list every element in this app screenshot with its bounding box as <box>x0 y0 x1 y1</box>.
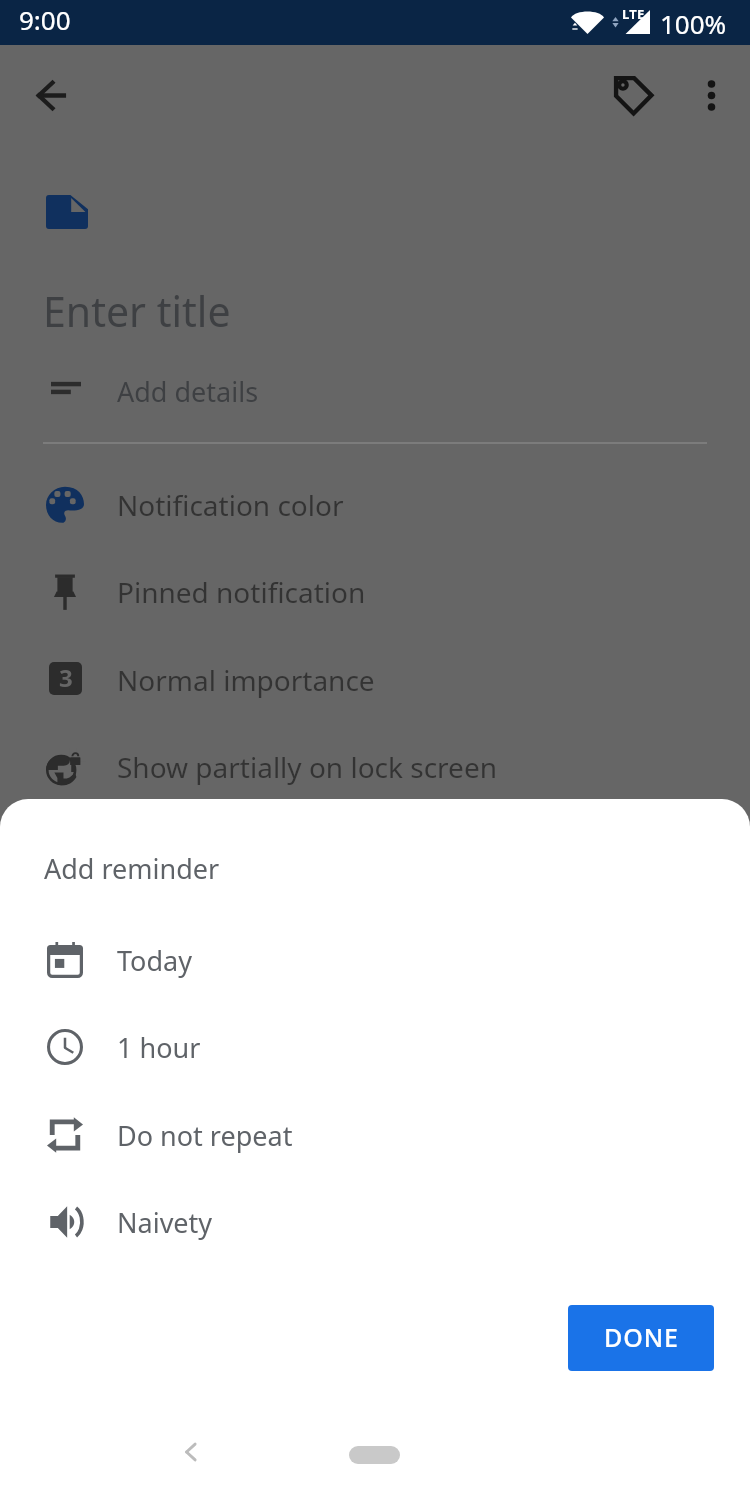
button[interactable]: Show partially on lock screen <box>0 724 750 809</box>
staticText: Naivety <box>117 1204 213 1241</box>
button[interactable]: Back <box>15 59 87 131</box>
button[interactable]: Pinned notification <box>0 549 750 634</box>
button[interactable]: Normal importance <box>0 637 750 722</box>
staticText: 3 <box>59 662 73 694</box>
staticText: LTE <box>622 5 645 23</box>
staticText: 9:00 <box>19 2 71 37</box>
staticText: Show partially on lock screen <box>117 748 497 786</box>
staticText: Add details <box>117 373 259 410</box>
staticText: DONE <box>604 1320 679 1354</box>
staticText: 100% <box>660 6 727 41</box>
button[interactable]: Back <box>165 1427 215 1477</box>
button[interactable]: Labels <box>597 59 669 131</box>
staticText: Pinned notification <box>117 573 366 611</box>
staticText: Today <box>117 942 192 979</box>
button[interactable]: DONE <box>568 1305 714 1371</box>
button[interactable]: Today <box>0 917 750 1002</box>
button[interactable]: More options <box>675 59 747 131</box>
staticText: 1 hour <box>117 1029 201 1066</box>
button[interactable]: Naivety <box>0 1179 750 1264</box>
staticText: Notification color <box>117 486 344 524</box>
staticText: Enter title <box>43 283 231 339</box>
button[interactable]: Notification color <box>0 462 750 547</box>
button[interactable]: Do not repeat <box>0 1092 750 1177</box>
staticText: Do not repeat <box>117 1117 293 1154</box>
staticText: Normal importance <box>117 661 375 699</box>
button[interactable]: 1 hour <box>0 1004 750 1089</box>
staticText: Add reminder <box>44 850 220 887</box>
